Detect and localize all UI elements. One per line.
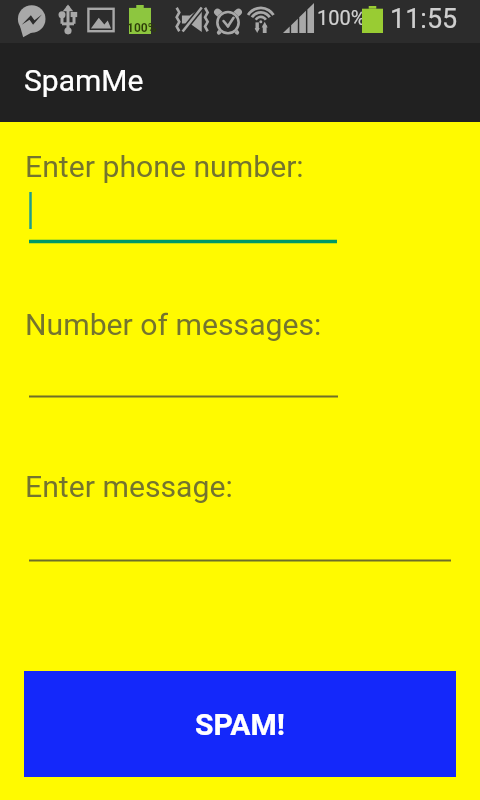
staticText: Number of messages: — [25, 307, 322, 342]
staticText: SPAM! — [195, 707, 285, 742]
staticText: Enter phone number: — [25, 149, 304, 184]
staticText: Enter message: — [25, 469, 233, 504]
staticText: 100% — [317, 6, 366, 29]
button[interactable]: Phone number input field — [24, 188, 344, 248]
staticText: 100% — [127, 21, 157, 35]
staticText: SpamMe — [24, 63, 144, 98]
button[interactable]: SPAM! — [24, 671, 456, 777]
button[interactable]: Number of messages input field — [24, 360, 344, 405]
staticText: 11:55 — [390, 3, 458, 35]
button[interactable]: Message input field — [24, 525, 456, 570]
